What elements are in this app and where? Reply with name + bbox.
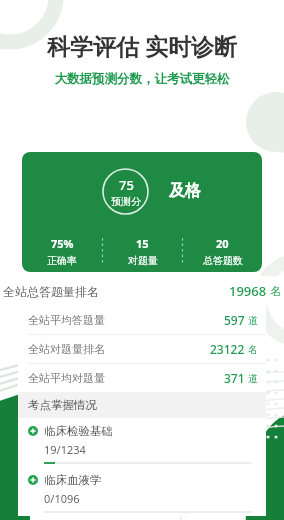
staticText: 全站平均对题量 (28, 371, 105, 385)
staticText: 科学评估 实时诊断 (0, 30, 284, 61)
staticText: 全站总答题量排名 (3, 284, 99, 299)
button[interactable]: 20 (183, 236, 262, 267)
button[interactable]: 全站平均对题量 (18, 364, 266, 392)
staticText: 道 (248, 372, 258, 385)
staticText: 20 (216, 236, 229, 251)
staticText: 19968 (229, 282, 267, 300)
staticText: 名 (270, 284, 281, 298)
staticText: 75% (51, 236, 74, 251)
staticText: 临床血液学 (44, 473, 102, 487)
staticText: 371 (224, 370, 245, 386)
button[interactable]: 全站平均答题量 (18, 306, 266, 334)
staticText: 19/1234 (44, 442, 86, 457)
button[interactable]: Expand (18, 418, 266, 467)
staticText: 总答题数 (203, 254, 243, 267)
staticText: 名 (248, 343, 258, 356)
staticText: 及格 (169, 181, 201, 201)
staticText: 15 (136, 236, 149, 251)
button[interactable]: 75% (22, 236, 102, 267)
staticText: 23122 (210, 341, 245, 357)
staticText: 75 (119, 176, 134, 194)
staticText: 临床检验基础 (44, 424, 113, 438)
button[interactable]: 全站对题量排名 (18, 335, 266, 363)
staticText: 预测分 (111, 195, 141, 208)
button[interactable]: 75 (22, 152, 262, 272)
staticText: 全站平均答题量 (28, 313, 105, 327)
other: Expand (28, 475, 38, 485)
staticText: 大数据预测分数，让考试更轻松 (0, 71, 284, 87)
staticText: 道 (248, 314, 258, 327)
staticText: 597 (224, 312, 245, 328)
other: Expand (28, 426, 38, 436)
staticText: 0/1096 (44, 491, 80, 506)
staticText: 考点掌握情况 (28, 398, 97, 412)
staticText: 对题量 (128, 254, 158, 267)
staticText: 正确率 (47, 254, 77, 267)
button[interactable]: Expand (18, 467, 266, 516)
staticText: 全站对题量排名 (28, 342, 105, 356)
button[interactable]: 全站总答题量排名 (0, 276, 284, 306)
button[interactable]: 15 (103, 236, 182, 267)
